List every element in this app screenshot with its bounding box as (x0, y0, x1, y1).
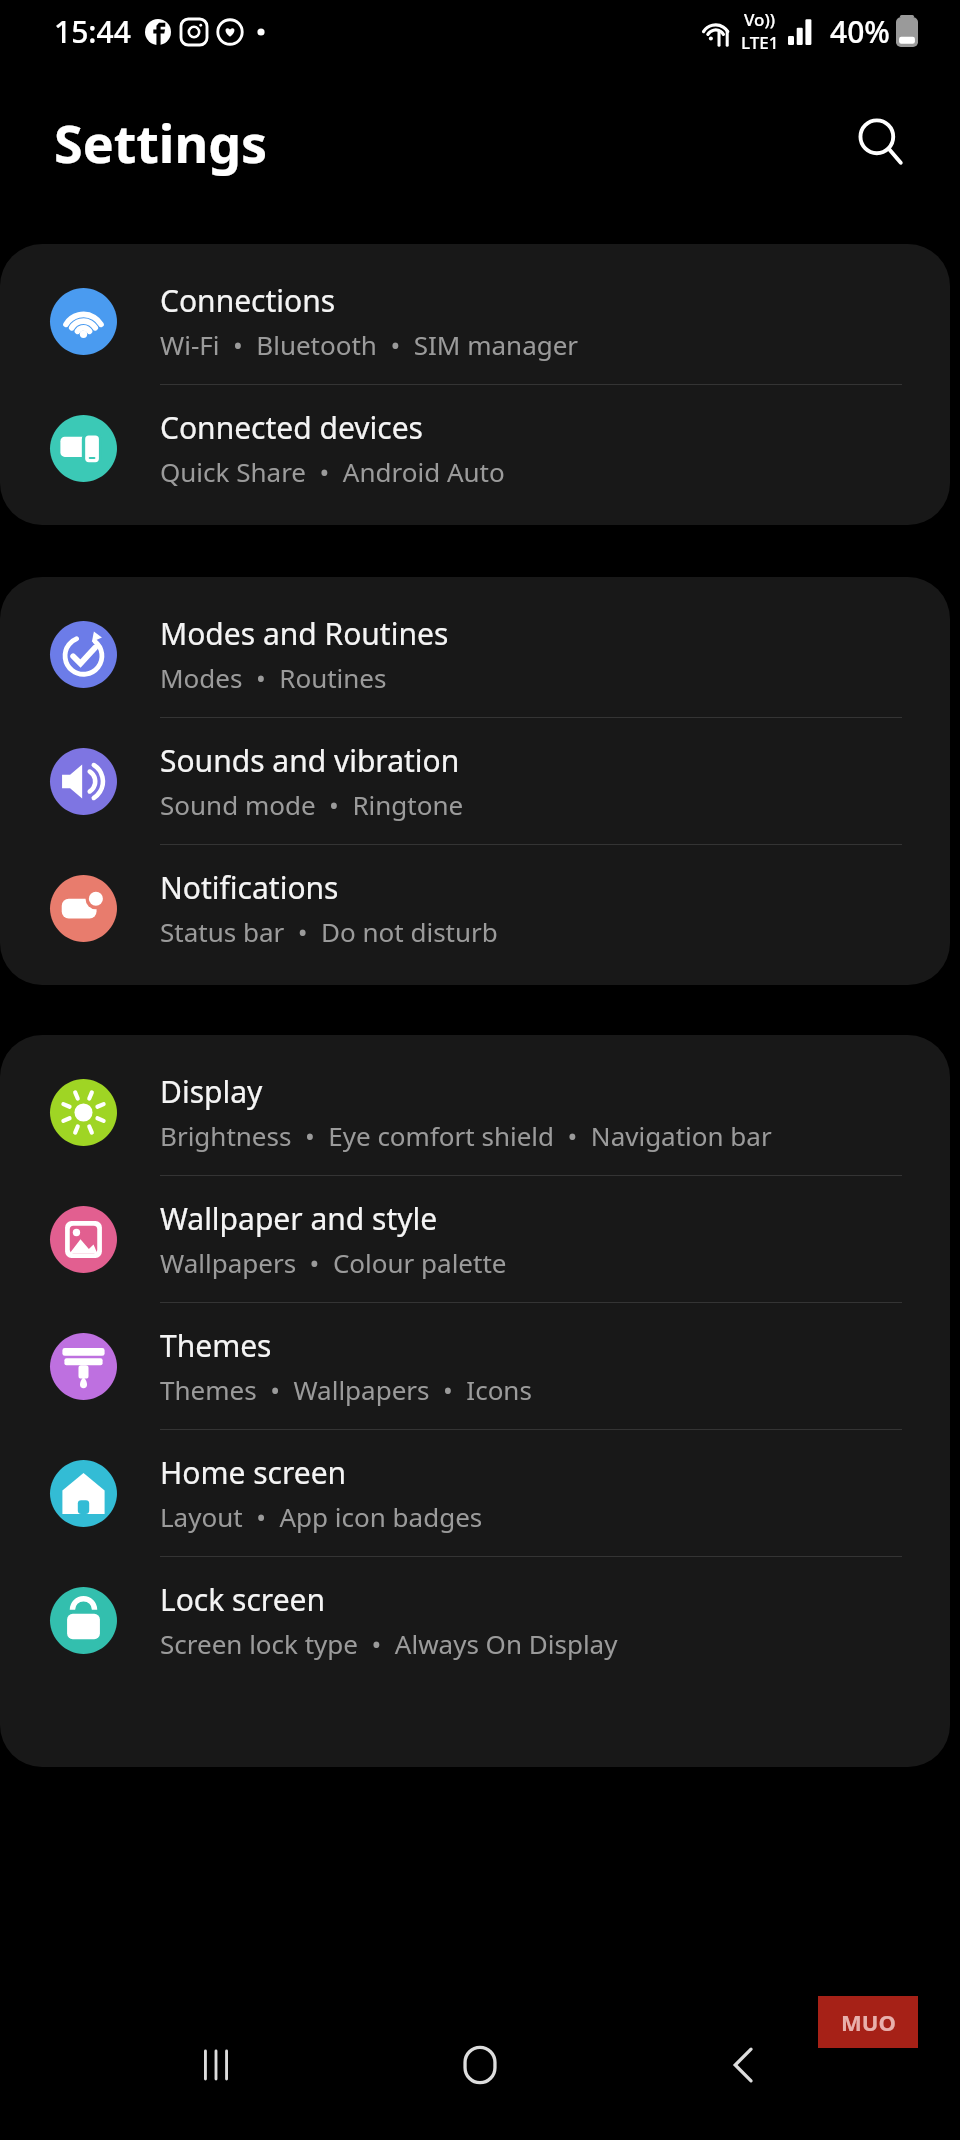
staticText: Settings (54, 107, 268, 178)
staticText: Vo)) (744, 8, 776, 31)
button[interactable]: Back (696, 2017, 792, 2113)
staticText: Wallpaper and style (160, 1198, 438, 1239)
button[interactable]: Wallpaper and style (0, 1176, 950, 1302)
staticText: Lock screen (160, 1579, 326, 1620)
staticText: Connected devices (160, 407, 423, 448)
staticText: Sound mode • Ringtone (160, 787, 464, 822)
staticText: Notifications (160, 867, 339, 908)
staticText: Status bar • Do not disturb (160, 914, 498, 949)
staticText: Themes (160, 1325, 272, 1366)
staticText: LTE1 (741, 31, 779, 54)
staticText: Themes • Wallpapers • Icons (160, 1372, 532, 1407)
staticText: Screen lock type • Always On Display (160, 1626, 618, 1661)
staticText: 40% (830, 11, 890, 52)
button[interactable]: Home screen (0, 1430, 950, 1556)
button[interactable]: Display (0, 1049, 950, 1175)
button[interactable]: Connections (0, 258, 950, 384)
button[interactable]: Themes (0, 1303, 950, 1429)
button[interactable]: Sounds and vibration (0, 718, 950, 844)
staticText: Layout • App icon badges (160, 1499, 483, 1534)
button[interactable]: Connected devices (0, 385, 950, 511)
button[interactable]: Recents (168, 2017, 264, 2113)
staticText: MUO (841, 2007, 896, 2037)
staticText: Brightness • Eye comfort shield • Naviga… (160, 1118, 772, 1153)
staticText: Display (160, 1071, 263, 1112)
button[interactable]: Search (838, 99, 924, 185)
staticText: Wi-Fi • Bluetooth • SIM manager (160, 327, 579, 362)
staticText: Modes • Routines (160, 660, 387, 695)
button[interactable]: Lock screen (0, 1557, 950, 1683)
staticText: Home screen (160, 1452, 347, 1493)
staticText: Quick Share • Android Auto (160, 454, 505, 489)
staticText: Connections (160, 280, 336, 321)
button[interactable]: Home (432, 2017, 528, 2113)
button[interactable]: Modes and Routines (0, 591, 950, 717)
staticText: Modes and Routines (160, 613, 449, 654)
staticText: Wallpapers • Colour palette (160, 1245, 507, 1280)
staticText: Sounds and vibration (160, 740, 460, 781)
button[interactable]: Notifications (0, 845, 950, 971)
staticText: 15:44 (54, 11, 131, 52)
